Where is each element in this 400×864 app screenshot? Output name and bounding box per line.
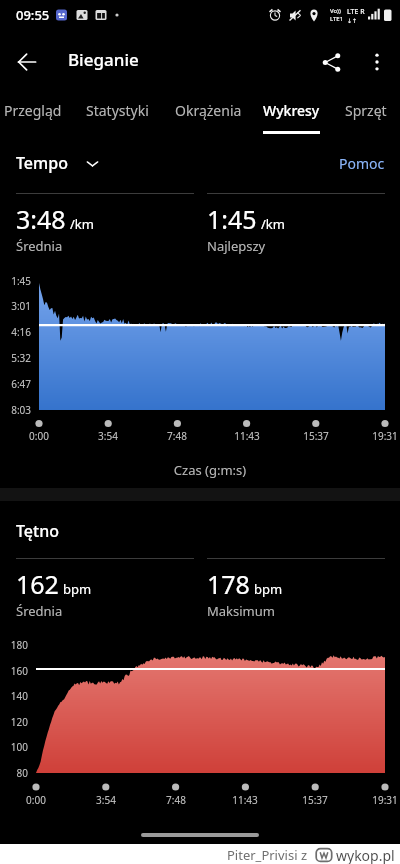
staticText: 15:37 — [286, 429, 346, 443]
staticText: 19:31 — [355, 429, 400, 443]
staticText: 1:45 — [0, 274, 31, 288]
staticText: Przegląd — [4, 101, 62, 120]
staticText: 5:32 — [0, 351, 31, 365]
button[interactable]: Okrążenia — [167, 90, 249, 134]
staticText: Najlepszy — [207, 237, 266, 255]
button[interactable]: Sprzęt — [335, 90, 397, 134]
staticText: Czas (g:m:s) — [10, 461, 400, 479]
staticText: 7:48 — [147, 429, 207, 443]
button[interactable]: More options — [354, 40, 400, 84]
button[interactable]: Przegląd — [0, 90, 67, 134]
button[interactable]: Statystyki — [77, 90, 157, 134]
staticText: Maksimum — [207, 602, 275, 620]
button[interactable]: Tętno — [16, 520, 59, 542]
staticText: Średnia — [16, 602, 63, 620]
staticText: 3:48 — [16, 202, 66, 236]
staticText: 162 — [16, 567, 59, 601]
staticText: 160 — [0, 664, 28, 678]
staticText: Bieganie — [68, 48, 139, 71]
button[interactable]: Pomoc — [339, 154, 385, 173]
staticText: bpm — [63, 580, 92, 598]
staticText: Tempo — [16, 152, 68, 174]
staticText: Vo)) — [330, 7, 341, 15]
staticText: 1:45 — [207, 202, 257, 236]
staticText: 11:43 — [215, 793, 275, 807]
staticText: 7:48 — [146, 793, 206, 807]
staticText: 180 — [0, 638, 28, 652]
staticText: Piter_Privisi z — [227, 846, 308, 864]
staticText: 8:03 — [0, 403, 31, 417]
button[interactable]: Tempo — [16, 152, 99, 174]
staticText: 09:55 — [16, 6, 50, 24]
staticText: Tętno — [16, 520, 59, 542]
staticText: LTE R — [347, 7, 365, 17]
staticText: /km — [70, 215, 94, 233]
staticText: wykop.pl — [336, 846, 395, 864]
staticText: 3:01 — [0, 299, 31, 313]
staticText: 80 — [0, 766, 28, 780]
staticText: 4:16 — [0, 325, 31, 339]
staticText: 11:43 — [217, 429, 277, 443]
staticText: 3:54 — [76, 793, 136, 807]
staticText: Wykresy — [263, 101, 320, 120]
staticText: 15:37 — [285, 793, 345, 807]
staticText: Sprzęt — [345, 101, 387, 120]
staticText: Średnia — [16, 237, 63, 255]
staticText: /km — [261, 215, 285, 233]
staticText: bpm — [254, 580, 283, 598]
staticText: 6:47 — [0, 377, 31, 391]
staticText: 3:54 — [78, 429, 138, 443]
button[interactable]: Wykresy — [255, 90, 327, 134]
staticText: Statystyki — [86, 101, 149, 120]
staticText: Okrążenia — [175, 101, 242, 120]
staticText: Pomoc — [339, 154, 385, 173]
button[interactable]: Back — [3, 40, 51, 84]
button[interactable]: Share — [308, 40, 354, 84]
staticText: 0:00 — [6, 793, 66, 807]
staticText: 100 — [0, 740, 28, 754]
staticText: 0:00 — [9, 429, 69, 443]
staticText: 120 — [0, 715, 28, 729]
staticText: LTE1 — [330, 15, 344, 23]
staticText: 140 — [0, 689, 28, 703]
staticText: 19:31 — [355, 793, 400, 807]
staticText: ↓↑ — [347, 17, 358, 24]
staticText: 178 — [207, 567, 250, 601]
